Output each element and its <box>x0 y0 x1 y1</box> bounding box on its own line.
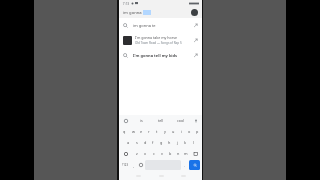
button[interactable]: j <box>173 137 181 148</box>
staticText: y <box>164 129 166 134</box>
button[interactable]: , <box>130 160 137 170</box>
button[interactable]: d <box>141 137 149 148</box>
button[interactable]: Voice input <box>191 115 201 126</box>
button[interactable]: f <box>149 137 157 148</box>
button[interactable]: h <box>165 137 173 148</box>
staticText: q <box>123 129 126 134</box>
button[interactable]: o <box>185 126 193 137</box>
staticText: ?123 <box>122 163 129 167</box>
button[interactable]: Search <box>119 48 202 62</box>
staticText: v <box>161 151 163 156</box>
staticText: tell <box>158 118 164 123</box>
button[interactable]: is <box>132 115 151 126</box>
button[interactable]: ?123 <box>120 160 130 170</box>
staticText: g <box>160 140 163 145</box>
button[interactable]: v <box>158 148 166 159</box>
button[interactable]: r <box>145 126 153 137</box>
button[interactable]: n <box>174 148 182 159</box>
button[interactable]: a <box>124 137 133 148</box>
button[interactable]: y <box>161 126 169 137</box>
staticText: cool <box>177 118 185 123</box>
button[interactable]: Emoji <box>137 160 145 170</box>
button[interactable]: e <box>137 126 145 137</box>
button[interactable]: im gonna <box>119 7 202 18</box>
staticText: i <box>181 129 182 134</box>
button[interactable]: q <box>120 126 129 137</box>
staticText: f <box>152 140 154 145</box>
staticText: I'm gonna take my horse <box>135 35 177 40</box>
button[interactable]: l <box>189 137 197 148</box>
button[interactable]: u <box>169 126 177 137</box>
staticText: c <box>153 151 155 156</box>
staticText: z <box>136 151 138 156</box>
staticText: r <box>148 129 150 134</box>
staticText: , <box>133 163 134 168</box>
staticText: x <box>144 151 147 156</box>
staticText: s <box>136 140 138 145</box>
staticText: im gonna <box>123 10 143 16</box>
button[interactable]: b <box>166 148 174 159</box>
staticText: u <box>172 129 175 134</box>
staticText: e <box>140 129 143 134</box>
staticText: d <box>144 140 147 145</box>
button[interactable]: cool <box>171 115 191 126</box>
staticText: l <box>193 140 194 145</box>
button[interactable]: w <box>129 126 137 137</box>
button[interactable]: t <box>153 126 161 137</box>
staticText: I'm gonna tell my kids <box>133 53 178 58</box>
button[interactable]: x <box>141 148 150 159</box>
button[interactable]: z <box>132 148 141 159</box>
button[interactable]: I'm gonna take my horse <box>119 32 202 48</box>
button[interactable]: Shift <box>120 148 132 159</box>
button[interactable]: s <box>133 137 141 148</box>
staticText: a <box>127 140 130 145</box>
staticText: o <box>188 129 191 134</box>
button[interactable]: Backspace <box>190 148 201 159</box>
staticText: t <box>156 129 158 134</box>
staticText: im gonna te <box>133 23 156 28</box>
button[interactable]: Insert suggestion <box>193 23 198 28</box>
staticText: . <box>184 163 185 168</box>
button[interactable]: p <box>193 126 201 137</box>
button[interactable]: Insert suggestion <box>193 53 198 58</box>
button[interactable]: c <box>150 148 158 159</box>
button[interactable]: m <box>182 148 190 159</box>
staticText: w <box>132 129 135 134</box>
button[interactable]: Google <box>120 115 132 126</box>
button[interactable]: Home <box>157 171 165 180</box>
button[interactable]: Insert suggestion <box>193 38 198 43</box>
button[interactable]: tell <box>151 115 171 126</box>
other: Search <box>123 23 128 28</box>
staticText: k <box>184 140 187 145</box>
button[interactable]: i <box>177 126 185 137</box>
button[interactable]: Search <box>189 160 200 170</box>
button[interactable]: k <box>181 137 189 148</box>
staticText: m <box>184 151 188 156</box>
staticText: Old Town Road — Songs of Rap 5 <box>135 41 182 45</box>
other: Search <box>123 53 128 58</box>
staticText: j <box>177 140 178 145</box>
staticText: n <box>177 151 180 156</box>
button[interactable]: Recents <box>179 171 187 180</box>
button[interactable]: Back <box>134 171 142 180</box>
staticText: is <box>140 118 143 123</box>
staticText: 7:13 <box>122 2 130 6</box>
staticText: h <box>168 140 171 145</box>
staticText: b <box>169 151 172 156</box>
button[interactable]: g <box>157 137 165 148</box>
button[interactable]: Clear search <box>191 9 198 16</box>
staticText: p <box>196 129 199 134</box>
button[interactable]: Search <box>119 18 202 32</box>
